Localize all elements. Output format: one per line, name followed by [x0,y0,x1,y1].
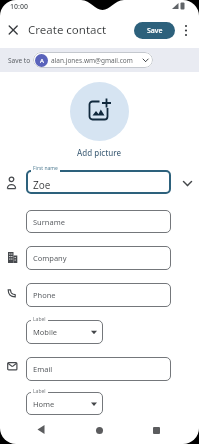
staticText: Label [33,388,46,395]
button[interactable]: A [33,52,153,68]
staticText: Company [33,253,67,263]
staticText: 10:00 [10,2,28,12]
staticText: First name [33,165,58,172]
button[interactable] [89,420,109,440]
button[interactable]: Phone [26,283,171,307]
staticText: Add picture [77,147,122,158]
button[interactable]: Email [26,357,171,381]
staticText: Mobile [33,327,58,337]
button[interactable] [146,420,166,440]
button[interactable]: Mobile [26,320,103,344]
button[interactable] [4,25,22,43]
button[interactable]: Zoe [26,170,171,194]
staticText: Save to [8,56,31,65]
button[interactable]: Home [26,392,103,415]
staticText: Label [33,316,46,323]
button[interactable] [30,420,50,440]
staticText: A [40,57,44,65]
staticText: Create contact [28,22,107,38]
staticText: Zoe [33,178,51,192]
staticText: Save [147,26,163,36]
staticText: Surname [33,217,65,227]
staticText: alan.jones.wm@gmail.com [51,56,133,65]
button[interactable]: Company [26,246,171,270]
button[interactable] [181,22,191,39]
staticText: Home [33,399,55,409]
staticText: Email [33,364,53,374]
button[interactable]: Surname [26,210,171,233]
staticText: Phone [33,290,56,300]
button[interactable]: Save [134,22,175,39]
button[interactable] [70,82,129,141]
